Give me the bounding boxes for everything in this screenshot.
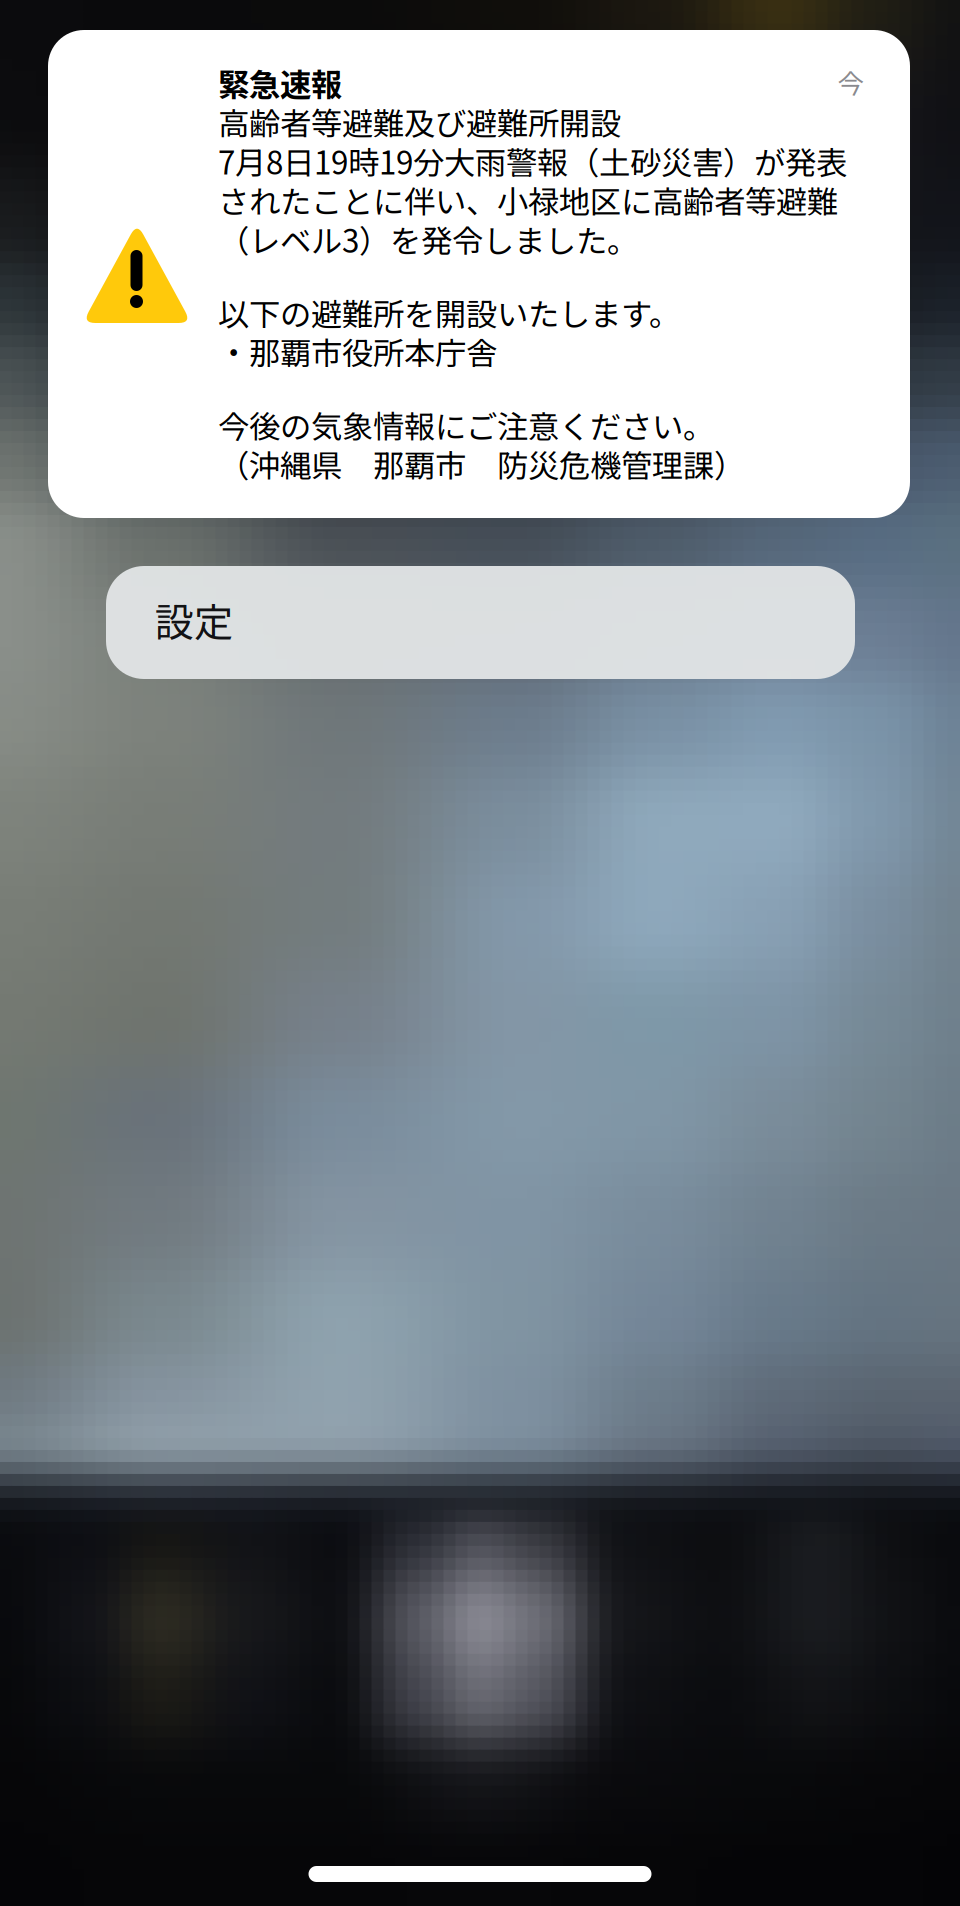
staticText: 今後の気象情報にご注意ください。: [218, 405, 714, 444]
staticText: （レベル3）を発令しました。: [218, 219, 638, 258]
button[interactable]: 設定: [106, 566, 855, 679]
staticText: 以下の避難所を開設いたします。: [218, 293, 680, 332]
staticText: 今: [837, 65, 864, 99]
staticText: 緊急速報: [218, 63, 342, 102]
staticText: ・那覇市役所本庁舎: [218, 332, 497, 371]
staticText: 7月8日19時19分大雨警報（土砂災害）が発表: [218, 141, 847, 180]
staticText: 高齢者等避難及び避難所開設: [218, 102, 621, 141]
staticText: （沖縄県 那覇市 防災危機管理課）: [218, 444, 745, 483]
staticText: 設定: [155, 594, 233, 645]
staticText: されたことに伴い、小禄地区に高齢者等避難: [218, 180, 838, 219]
